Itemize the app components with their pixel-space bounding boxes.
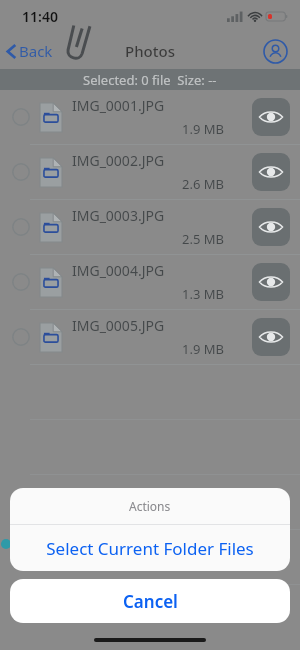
button[interactable]: Cancel: [10, 579, 290, 623]
button[interactable]: Preview: [252, 263, 290, 301]
staticText: Actions: [129, 498, 171, 514]
staticText: 1.9 MB: [72, 120, 224, 138]
staticText: Selected: 0 file Size: --: [83, 71, 217, 89]
button[interactable]: Back: [0, 35, 61, 67]
staticText: Back: [19, 41, 53, 61]
staticText: Select Current Folder Files: [46, 537, 254, 560]
staticText: IMG_0001.JPG: [72, 96, 165, 115]
staticText: IMG_0003.JPG: [72, 206, 165, 225]
staticText: 2.6 MB: [72, 175, 224, 193]
button[interactable]: Preview: [252, 98, 290, 136]
button[interactable]: IMG_0001.JPG: [0, 90, 300, 145]
staticText: 1.3 MB: [72, 285, 224, 303]
staticText: 2.5 MB: [72, 230, 224, 248]
button[interactable]: Preview: [252, 208, 290, 246]
button[interactable]: Preview: [252, 153, 290, 191]
button[interactable]: IMG_0003.JPG: [0, 200, 300, 255]
staticText: Photos: [125, 41, 175, 61]
staticText: 11:40: [22, 7, 58, 26]
button[interactable]: Preview: [252, 318, 290, 356]
button[interactable]: Select Current Folder Files: [10, 525, 290, 571]
button[interactable]: Account: [260, 36, 290, 66]
button[interactable]: IMG_0002.JPG: [0, 145, 300, 200]
staticText: IMG_0002.JPG: [72, 151, 165, 170]
button[interactable]: IMG_0004.JPG: [0, 255, 300, 310]
staticText: IMG_0005.JPG: [72, 316, 165, 335]
other: Attachment: [66, 24, 92, 61]
staticText: 1.9 MB: [72, 340, 224, 358]
staticText: IMG_0004.JPG: [72, 261, 165, 280]
staticText: Cancel: [123, 590, 178, 613]
button[interactable]: IMG_0005.JPG: [0, 310, 300, 365]
